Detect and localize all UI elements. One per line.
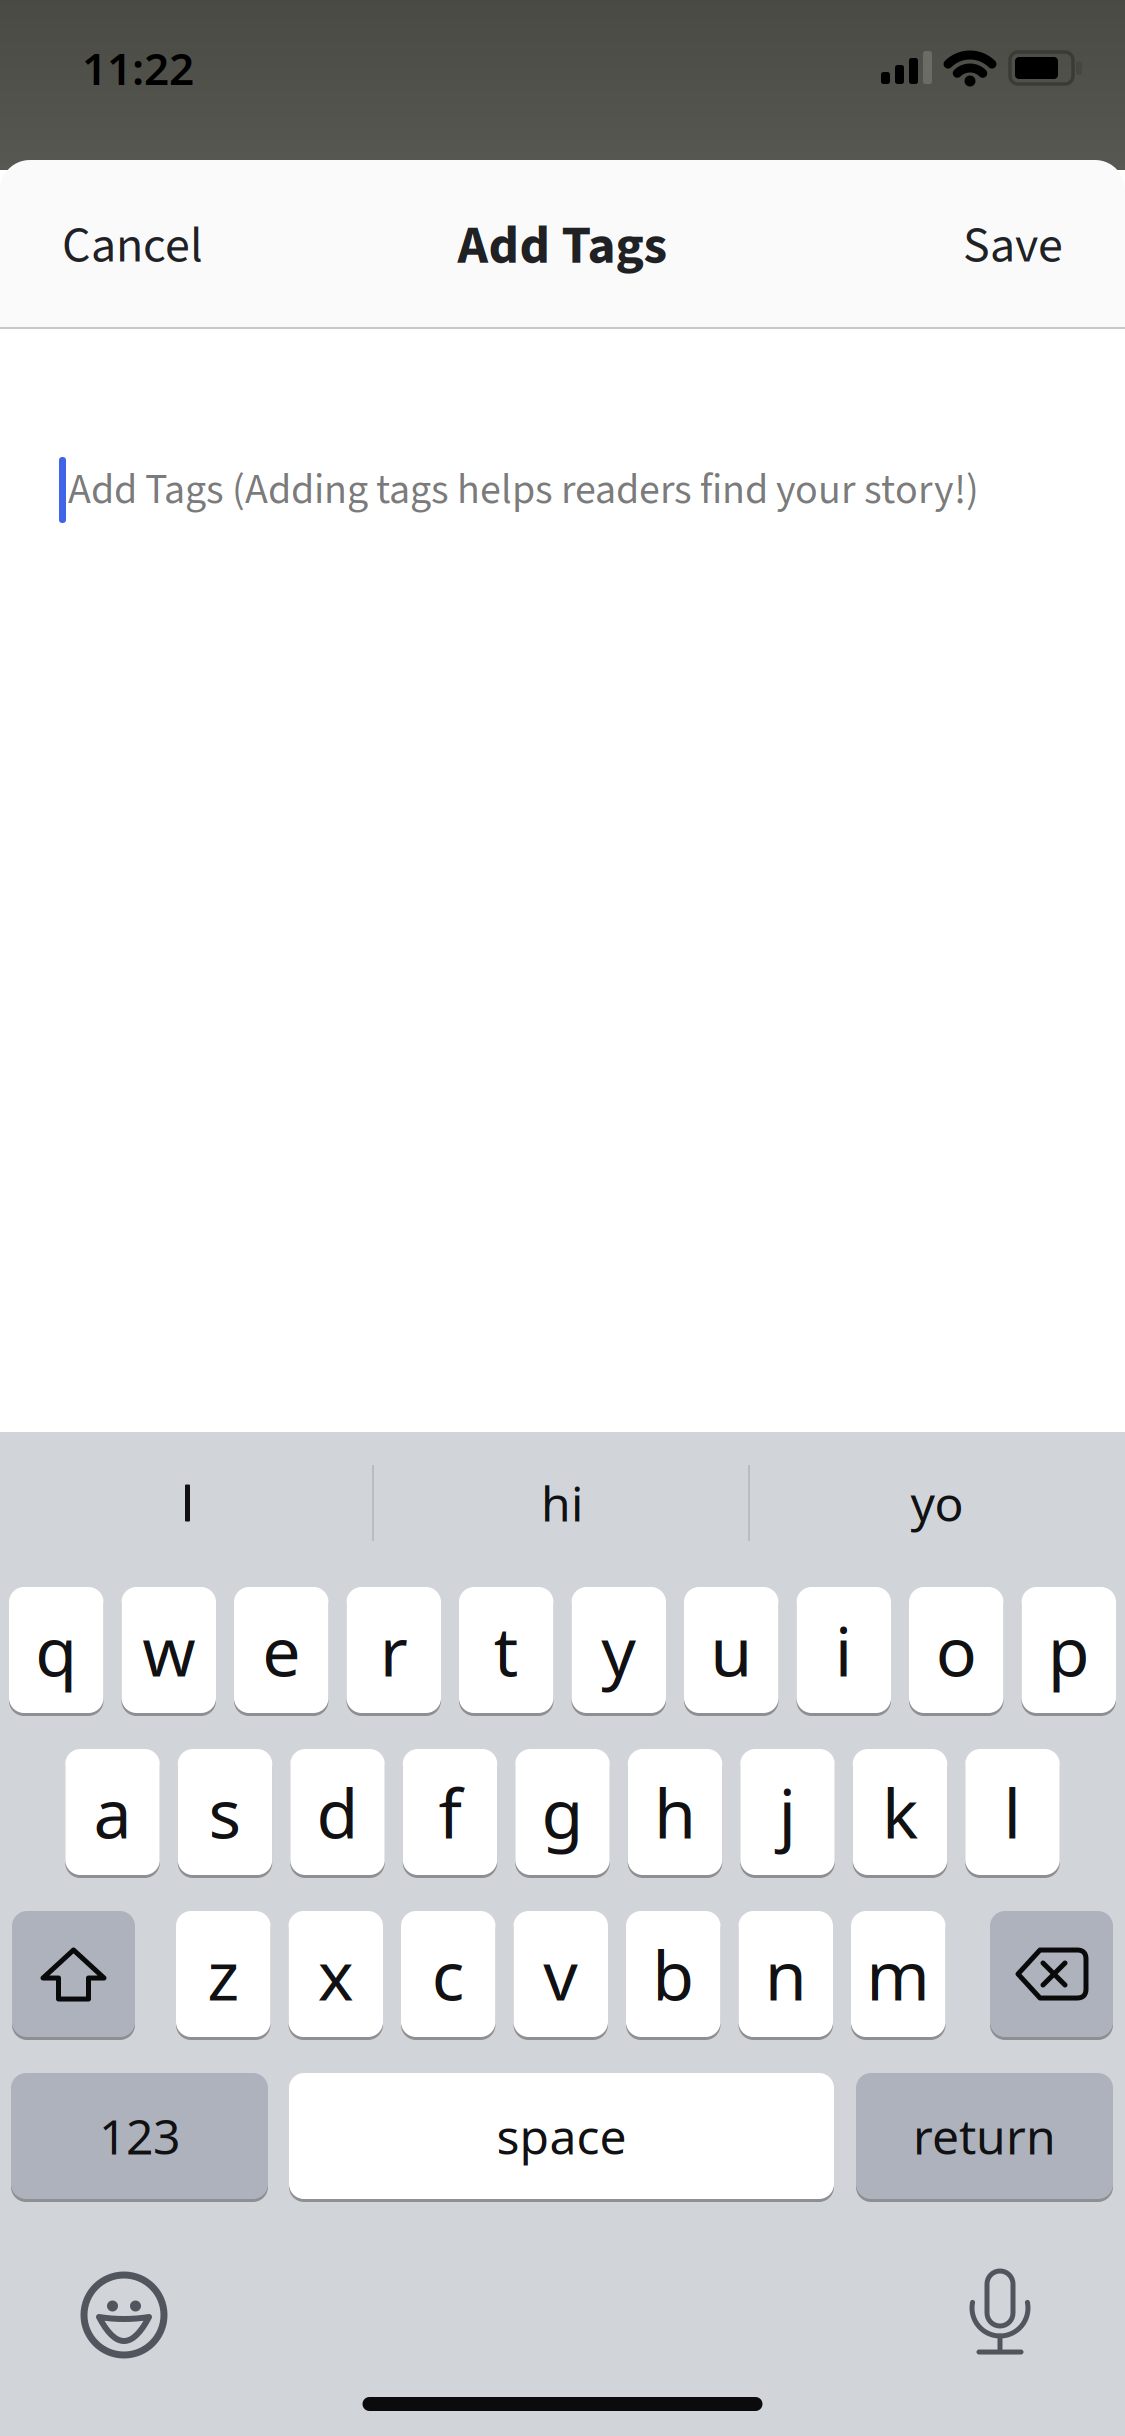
staticText: hi — [541, 1471, 583, 1535]
button[interactable]: yo — [757, 1458, 1117, 1548]
staticText: v — [543, 1929, 578, 2019]
button[interactable]: x — [288, 1909, 383, 2038]
button[interactable]: m — [851, 1909, 945, 2038]
button[interactable]: z — [176, 1909, 270, 2038]
staticText: r — [380, 1605, 408, 1695]
staticText: q — [35, 1605, 77, 1695]
button[interactable]: Dictation — [946, 2258, 1056, 2368]
button[interactable]: 123 — [11, 2071, 268, 2200]
staticText: Cancel — [62, 210, 203, 282]
button[interactable]: g — [515, 1747, 610, 1876]
button[interactable]: u — [684, 1585, 778, 1714]
staticText: space — [496, 2104, 626, 2168]
button[interactable]: y — [571, 1585, 666, 1714]
staticText: yo — [910, 1471, 963, 1535]
staticText: l — [1003, 1767, 1021, 1857]
staticText: Add Tags — [457, 208, 667, 284]
staticText: p — [1048, 1605, 1090, 1695]
button[interactable]: s — [178, 1747, 272, 1876]
button[interactable]: k — [853, 1747, 947, 1876]
button[interactable]: o — [909, 1585, 1003, 1714]
staticText: return — [913, 2104, 1056, 2168]
staticText: f — [438, 1767, 461, 1857]
button[interactable]: space — [289, 2071, 834, 2200]
staticText: d — [316, 1767, 358, 1857]
staticText: 123 — [99, 2104, 180, 2168]
button[interactable]: v — [513, 1909, 608, 2038]
button[interactable]: c — [401, 1909, 495, 2038]
button[interactable]: Save — [963, 210, 1063, 282]
staticText: g — [541, 1767, 583, 1857]
staticText: b — [652, 1929, 694, 2019]
staticText: Save — [963, 210, 1063, 282]
button[interactable]: hi — [382, 1458, 742, 1548]
button[interactable]: d — [290, 1747, 385, 1876]
button[interactable]: i — [796, 1585, 891, 1714]
button[interactable]: t — [459, 1585, 553, 1714]
button[interactable]: Delete — [990, 1909, 1113, 2038]
button[interactable]: l — [965, 1747, 1060, 1876]
button[interactable]: b — [626, 1909, 720, 2038]
staticText: j — [778, 1767, 796, 1857]
staticText: k — [882, 1767, 918, 1857]
staticText: y — [601, 1605, 636, 1695]
button[interactable]: n — [738, 1909, 833, 2038]
staticText: a — [93, 1767, 131, 1857]
staticText: s — [208, 1767, 241, 1857]
button[interactable]: Emoji — [69, 2260, 179, 2370]
staticText: h — [654, 1767, 696, 1857]
button[interactable]: r — [346, 1585, 441, 1714]
staticText: o — [936, 1605, 977, 1695]
staticText: m — [866, 1929, 930, 2019]
button[interactable]: j — [740, 1747, 835, 1876]
staticText: z — [207, 1929, 239, 2019]
button[interactable]: Cancel — [62, 210, 203, 282]
button[interactable]: q — [9, 1585, 103, 1714]
button[interactable]: w — [121, 1585, 216, 1714]
staticText: e — [262, 1605, 300, 1695]
button[interactable]: p — [1021, 1585, 1116, 1714]
staticText: x — [318, 1929, 354, 2019]
staticText: n — [765, 1929, 807, 2019]
staticText: u — [710, 1605, 752, 1695]
button[interactable]: I — [7, 1458, 367, 1548]
button[interactable]: return — [856, 2071, 1113, 2200]
button[interactable]: e — [234, 1585, 328, 1714]
button[interactable]: h — [628, 1747, 722, 1876]
button[interactable]: Shift — [12, 1909, 135, 2038]
staticText: w — [142, 1605, 195, 1695]
staticText: c — [432, 1929, 465, 2019]
button[interactable]: a — [65, 1747, 160, 1876]
button[interactable]: f — [403, 1747, 497, 1876]
staticText: Add Tags (Adding tags helps readers find… — [68, 460, 979, 520]
staticText: t — [494, 1605, 519, 1695]
staticText: i — [835, 1605, 853, 1695]
staticText: 11:22 — [82, 39, 194, 97]
